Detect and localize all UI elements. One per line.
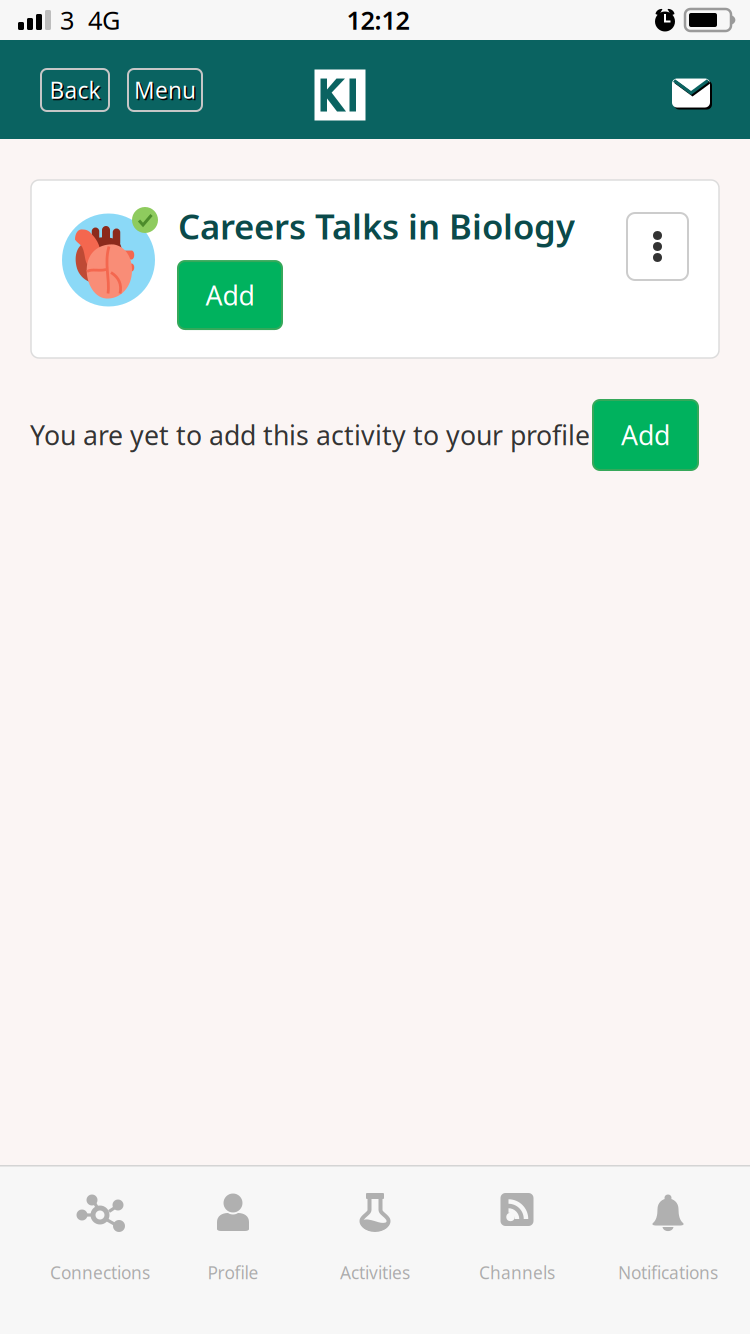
staticText: Careers Talks in Biology bbox=[178, 203, 575, 249]
staticText: Profile bbox=[207, 1261, 258, 1284]
button[interactable]: Activities bbox=[300, 1165, 450, 1334]
staticText: Notifications bbox=[618, 1261, 718, 1284]
button[interactable]: Menu bbox=[128, 69, 202, 111]
staticText: Menu bbox=[134, 75, 196, 105]
staticText: Channels bbox=[479, 1261, 555, 1284]
button[interactable]: Profile bbox=[158, 1165, 308, 1334]
staticText: You are yet to add this activity to your… bbox=[30, 417, 590, 453]
button[interactable]: Channels bbox=[442, 1165, 592, 1334]
staticText: Add bbox=[621, 417, 670, 453]
staticText: Back bbox=[51, 76, 102, 106]
button[interactable]: Notifications bbox=[593, 1165, 743, 1334]
button[interactable]: Connections bbox=[25, 1165, 175, 1334]
button[interactable]: Back bbox=[41, 69, 109, 111]
button[interactable]: More options bbox=[627, 213, 688, 280]
staticText: Menu bbox=[135, 76, 197, 106]
staticText: 12:12 bbox=[346, 3, 409, 37]
staticText: Connections bbox=[50, 1261, 150, 1284]
button[interactable]: Add bbox=[593, 400, 698, 470]
staticText: Add bbox=[205, 277, 254, 313]
staticText: 4G bbox=[88, 3, 120, 37]
button[interactable]: Messages bbox=[672, 78, 714, 111]
staticText: Activities bbox=[340, 1261, 410, 1284]
staticText: 3 bbox=[60, 3, 74, 37]
button[interactable]: Add bbox=[178, 261, 282, 329]
staticText: Back bbox=[49, 75, 100, 105]
